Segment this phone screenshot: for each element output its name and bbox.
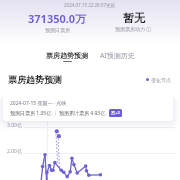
staticText: 预测日票房 [45,27,70,33]
staticText: 暂无 [123,11,145,25]
staticText: 预测票房动力 ⓘ [115,26,152,33]
staticText: AI预测历史 [100,51,135,61]
staticText: 变化节点 [151,77,171,83]
staticText: | [54,110,57,117]
staticText: 3.00亿 [7,122,22,129]
staticText: 票房趋势预测 [8,74,62,85]
staticText: 2.00亿 [7,148,22,155]
staticText: 371350.0万 [28,11,87,26]
staticText: 累+2 [111,110,120,116]
staticText: 预测累计票房 4.93亿 [59,110,106,117]
staticText: 2024.07.15 22:26:57更新 [64,2,116,8]
button[interactable]: 暂无 [115,11,152,33]
button[interactable]: AI预测历史 [100,51,135,61]
staticText: 票房趋势预测 [46,51,88,60]
button[interactable]: 票房趋势预测 [46,51,88,62]
staticText: 2024-07-15 星期一 · 点映 [10,100,67,107]
button[interactable]: 371350.0万 [28,11,87,33]
staticText: 预测日票房 1.35亿 [10,110,52,117]
